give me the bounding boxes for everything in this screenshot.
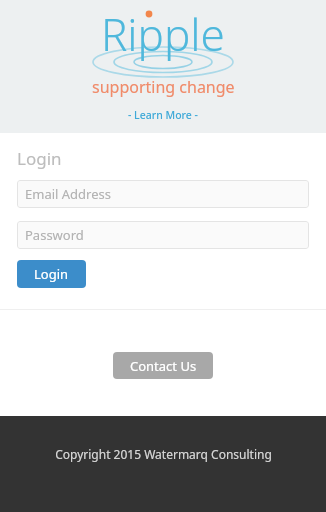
staticText: Email Address bbox=[25, 185, 111, 203]
staticText: - Learn More - bbox=[128, 108, 198, 122]
button[interactable]: Login bbox=[17, 260, 86, 288]
staticText: Login bbox=[34, 265, 69, 283]
button[interactable]: - Learn More - bbox=[124, 107, 202, 123]
button[interactable]: Password bbox=[17, 221, 309, 249]
staticText: Contact Us bbox=[130, 357, 197, 375]
staticText: Login bbox=[17, 147, 62, 170]
button[interactable]: Contact Us bbox=[113, 352, 213, 379]
staticText: Password bbox=[25, 226, 84, 244]
staticText: Ripple bbox=[101, 4, 225, 64]
staticText: supporting change bbox=[92, 76, 235, 98]
staticText: Copyright 2015 Watermarq Consulting bbox=[55, 446, 272, 462]
button[interactable]: Email Address bbox=[17, 180, 309, 208]
